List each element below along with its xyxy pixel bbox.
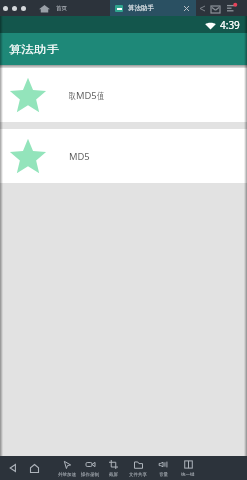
button[interactable]: Home [27,461,41,475]
staticText: 值 [97,90,105,102]
staticText: 统一键 [181,472,195,478]
staticText: 4:39 [220,18,240,32]
button[interactable]: Back [6,461,20,475]
button[interactable]: 算法助手 [110,0,196,16]
button[interactable]: Menu [225,2,238,15]
staticText: 外放加速 [58,472,76,478]
staticText: MD5 [69,150,90,163]
button[interactable]: Previous tab [197,3,207,13]
staticText: 算法助手 [9,43,60,56]
button[interactable]: 音量 [151,456,175,480]
button[interactable]: Close tab [181,3,191,13]
staticText: 截屏 [109,472,118,478]
button[interactable]: 操作录制 [78,456,102,480]
button[interactable]: Home [39,3,67,14]
staticText: 音量 [159,472,168,478]
button[interactable]: 文件共享 [126,456,150,480]
staticText: 文件共享 [129,472,147,478]
staticText: 操作录制 [81,472,99,478]
button[interactable]: 取 [0,68,247,122]
staticText: MD5 [76,89,97,102]
button[interactable]: MD5 [0,129,247,183]
button[interactable]: Mail [209,3,221,15]
button[interactable]: 统一键 [176,456,200,480]
staticText: 取 [69,90,77,102]
staticText: 首页 [56,5,67,12]
staticText: 算法助手 [128,4,154,12]
button[interactable]: 截屏 [101,456,125,480]
button[interactable]: 外放加速 [55,456,79,480]
